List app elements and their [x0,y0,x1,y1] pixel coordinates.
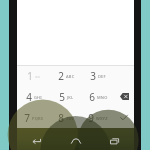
staticText: GHI [34,95,42,100]
button[interactable]: Home [56,132,95,150]
button[interactable]: 2 [50,66,82,86]
staticText: oo [35,74,40,79]
staticText: 7 [24,111,30,125]
staticText: DEF [98,74,106,79]
staticText: JKL [67,95,74,100]
staticText: ABC [66,74,75,79]
button[interactable]: 4 [17,86,50,107]
button[interactable]: 3 [82,66,114,86]
button[interactable]: 7 [17,107,50,128]
button[interactable]: 6 [82,86,114,107]
staticText: WXYZ [96,116,108,121]
button[interactable]: Back [17,132,56,150]
staticText: MNO [97,95,108,100]
button[interactable]: Recents [95,132,134,150]
staticText: 8 [58,111,64,125]
staticText: 5 [59,90,65,104]
staticText: 9 [88,111,94,125]
button[interactable]: Backspace [114,86,134,107]
button[interactable]: 1 [17,66,50,86]
staticText: TUV [66,116,75,121]
button[interactable]: Done [114,107,134,128]
staticText: PQRS [32,116,44,121]
staticText: 2 [58,69,64,83]
button[interactable]: 9 [82,107,114,128]
button[interactable]: 5 [50,86,82,107]
staticText: 3 [90,69,96,83]
staticText: 6 [89,90,95,104]
staticText: 1 [27,69,33,83]
button[interactable]: 8 [50,107,82,128]
staticText: 4 [26,90,32,104]
